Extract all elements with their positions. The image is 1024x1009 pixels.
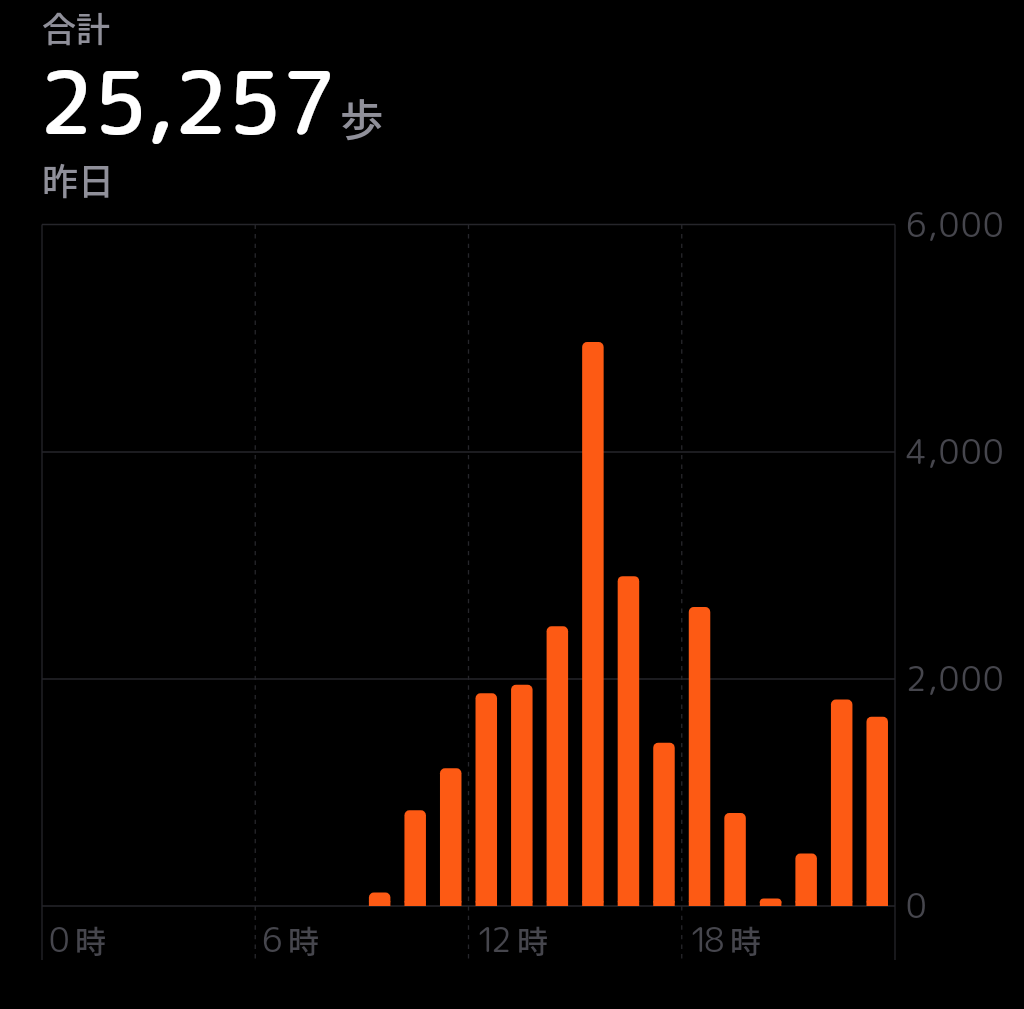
staticText: 0 (49, 917, 74, 963)
staticText: 0 (906, 883, 929, 929)
staticText: 時 (288, 917, 324, 962)
staticText: 時 (517, 917, 553, 962)
staticText: 時 (730, 917, 766, 962)
staticText: 8 (704, 917, 729, 963)
button[interactable]: 1時間ごとの歩数グラフ (28, 211, 909, 1009)
staticText: 合計 (42, 3, 110, 52)
staticText: 2 (491, 917, 516, 963)
staticText: 4,000 (906, 429, 1006, 475)
staticText: 昨日 (42, 153, 115, 205)
staticText: 1 (689, 917, 714, 963)
staticText: 時 (75, 917, 111, 962)
staticText: 1 (476, 917, 501, 963)
staticText: 25,257 (39, 42, 336, 162)
staticText: 6,000 (906, 202, 1006, 248)
staticText: 2,000 (906, 656, 1006, 702)
staticText: 歩 (340, 86, 384, 149)
staticText: 6 (262, 917, 287, 963)
button[interactable]: 合計 (30, 0, 410, 210)
